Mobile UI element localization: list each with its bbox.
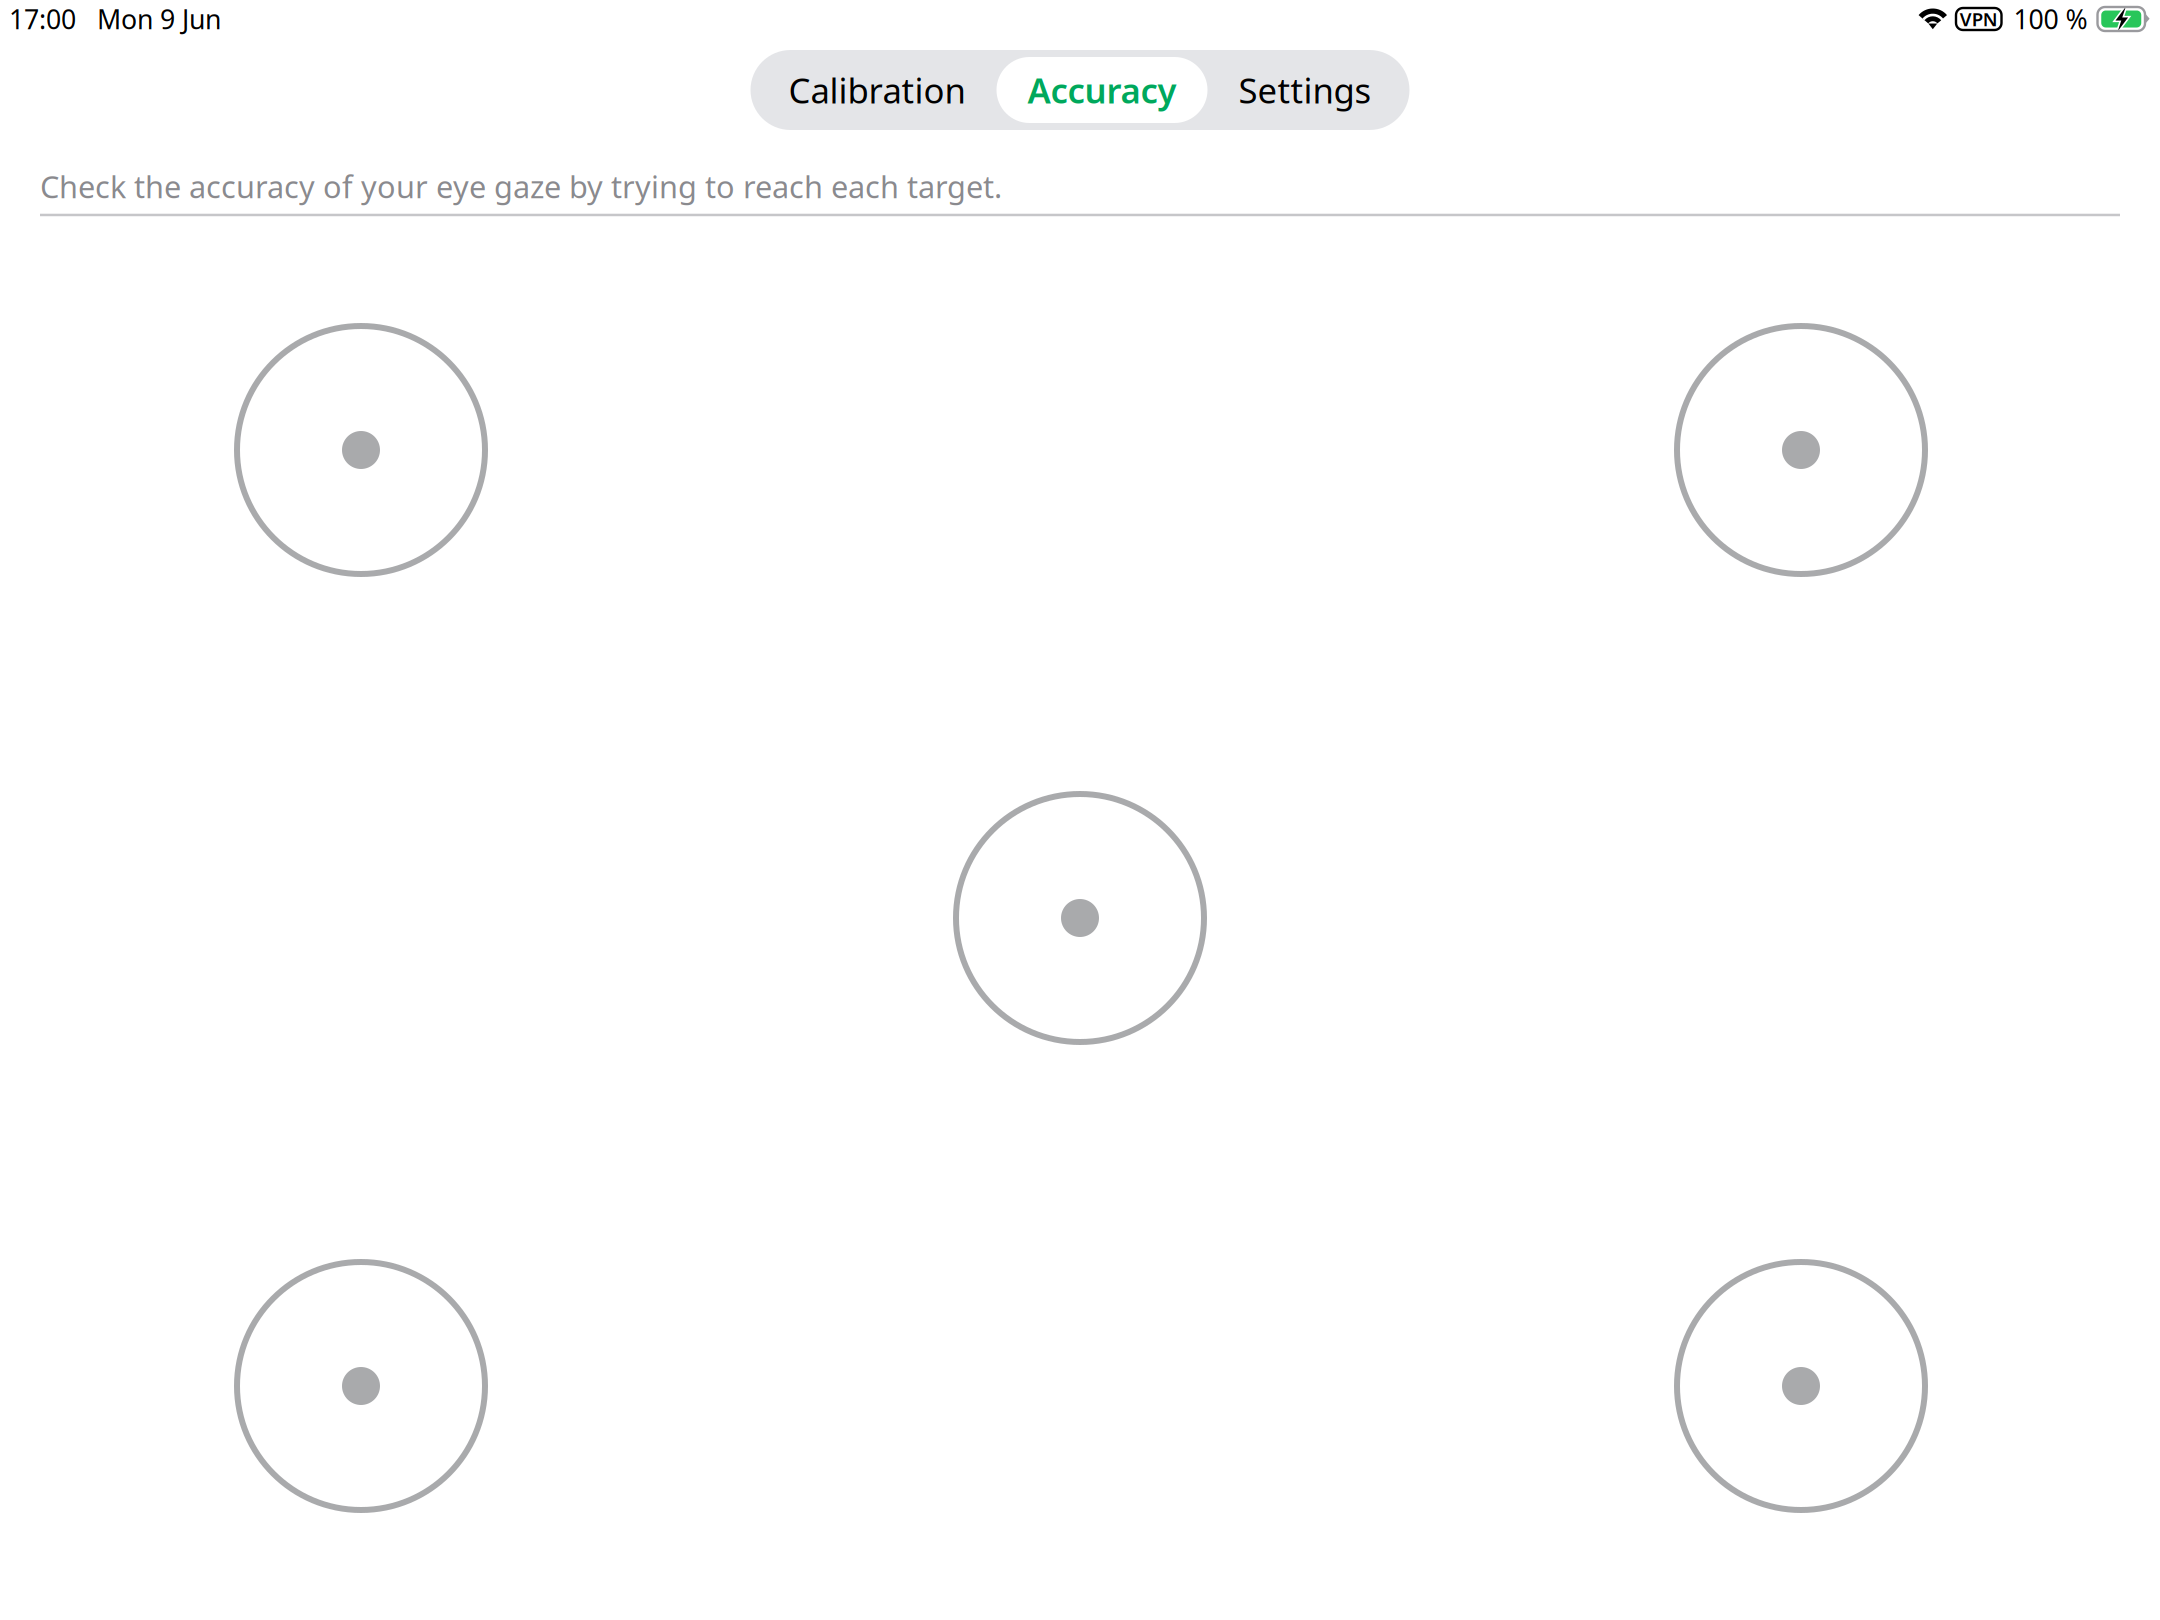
button[interactable]: Center gaze target <box>956 794 1204 1042</box>
button[interactable]: Calibration <box>757 57 996 123</box>
staticText: Accuracy <box>1027 67 1176 113</box>
button[interactable]: Settings <box>1207 57 1402 123</box>
staticText: Mon 9 Jun <box>97 1 221 37</box>
staticText: 100 % <box>2013 1 2087 37</box>
staticText: VPN <box>1960 7 1998 31</box>
button[interactable]: Top right gaze target <box>1677 326 1925 574</box>
button[interactable]: Bottom right gaze target <box>1677 1262 1925 1510</box>
staticText: 17:00 <box>9 1 76 37</box>
staticText: Calibration <box>788 67 965 113</box>
button[interactable]: Accuracy <box>996 57 1207 123</box>
staticText: Check the accuracy of your eye gaze by t… <box>40 166 1002 207</box>
staticText: Settings <box>1238 67 1371 113</box>
button[interactable]: Bottom left gaze target <box>237 1262 485 1510</box>
button[interactable]: Top left gaze target <box>237 326 485 574</box>
